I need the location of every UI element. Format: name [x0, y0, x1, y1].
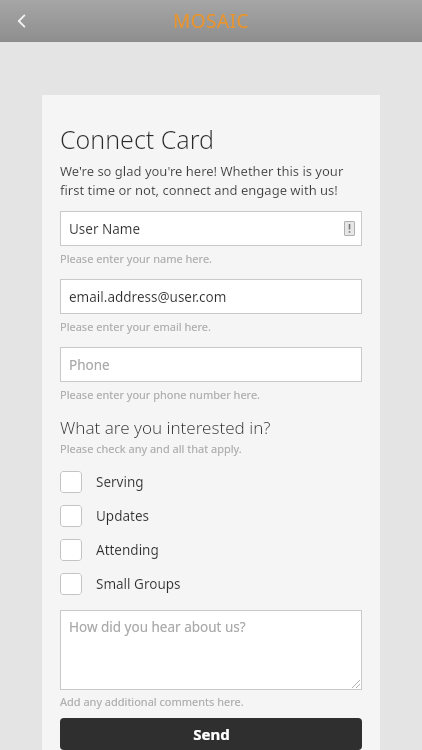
staticText: email.address@user.com [69, 288, 227, 306]
button[interactable]: Back [0, 0, 44, 42]
staticText: Send [193, 724, 230, 744]
staticText: Please enter your email here. [60, 319, 211, 334]
staticText: Small Groups [96, 575, 181, 593]
staticText: Please check any and all that apply. [60, 441, 242, 456]
staticText: Add any additional comments here. [60, 694, 244, 709]
button[interactable]: User Name [60, 211, 362, 246]
staticText: What are you interested in? [60, 416, 271, 439]
button[interactable]: email.address@user.com [60, 279, 362, 314]
button[interactable]: Small Groups [60, 567, 362, 601]
button[interactable]: Updates [60, 499, 362, 533]
button[interactable]: Send [60, 718, 362, 750]
button[interactable]: How did you hear about us? [60, 610, 362, 690]
staticText: Connect Card [60, 122, 215, 156]
staticText: Please enter your name here. [60, 251, 213, 266]
staticText: Serving [96, 473, 144, 491]
staticText: Attending [96, 541, 159, 559]
staticText: Please enter your phone number here. [60, 387, 261, 402]
button[interactable]: Serving [60, 465, 362, 499]
button[interactable]: Attending [60, 533, 362, 567]
staticText: Phone [69, 356, 110, 374]
staticText: Updates [96, 507, 150, 525]
staticText: We're so glad you're here! Whether this … [60, 162, 362, 199]
button[interactable]: Phone [60, 347, 362, 382]
staticText: MOSAIC [173, 8, 250, 34]
staticText: User Name [69, 220, 141, 238]
staticText: How did you hear about us? [69, 618, 246, 636]
